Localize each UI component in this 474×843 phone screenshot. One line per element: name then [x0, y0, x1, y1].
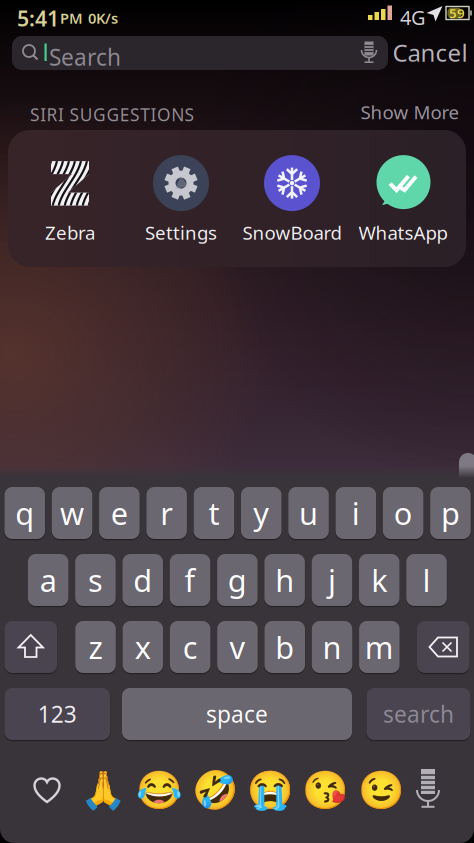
staticText: 😘 [302, 769, 348, 811]
button[interactable]: x [123, 621, 163, 673]
staticText: n [323, 627, 342, 667]
button[interactable]: z [75, 621, 116, 673]
button[interactable]: c [170, 621, 210, 673]
button[interactable]: b [264, 621, 305, 673]
staticText: m [365, 627, 394, 667]
staticText: d [133, 560, 152, 600]
staticText: o [394, 493, 413, 533]
staticText: 🤣 [192, 769, 238, 811]
button[interactable]: p [430, 487, 471, 539]
staticText: Search [49, 42, 121, 72]
staticText: q [15, 493, 34, 533]
staticText: k [371, 560, 387, 600]
button[interactable]: Settings [126, 158, 236, 242]
button[interactable]: 🙏 [80, 769, 126, 811]
button[interactable]: 😭 [247, 769, 293, 811]
staticText: SIRI SUGGESTIONS [30, 103, 194, 126]
button[interactable]: f [170, 554, 210, 606]
staticText: Cancel [392, 37, 467, 68]
staticText: 0K/s [84, 8, 118, 28]
staticText: 59 [449, 4, 465, 22]
button[interactable]: r [146, 487, 187, 539]
staticText: e [111, 493, 128, 533]
button[interactable]: Delete [417, 621, 469, 673]
button[interactable]: Heart [29, 772, 65, 808]
button[interactable]: s [75, 554, 116, 606]
staticText: 😭 [247, 769, 293, 811]
button[interactable]: Shift [4, 621, 57, 673]
button[interactable]: Dictation [356, 37, 382, 67]
button[interactable]: h [264, 554, 305, 606]
staticText: Zebra [45, 220, 95, 245]
staticText: h [275, 560, 294, 600]
staticText: 5:41 [17, 4, 59, 32]
button[interactable]: a [28, 554, 68, 606]
staticText: 😂 [136, 769, 182, 811]
staticText: b [275, 627, 294, 667]
button[interactable]: Cancel [392, 37, 467, 68]
button[interactable]: 😉 [358, 769, 404, 811]
button[interactable]: k [359, 554, 399, 606]
button[interactable]: 😂 [136, 769, 182, 811]
button[interactable]: e [99, 487, 140, 539]
button[interactable]: Search [12, 36, 388, 70]
staticText: y [253, 493, 269, 533]
staticText: search [383, 699, 454, 729]
button[interactable]: space [122, 688, 352, 740]
button[interactable]: search [366, 688, 470, 740]
button[interactable]: i [336, 487, 376, 539]
button[interactable]: v [217, 621, 258, 673]
staticText: f [184, 560, 195, 600]
staticText: l [422, 560, 430, 600]
button[interactable]: m [359, 621, 400, 673]
staticText: c [183, 627, 198, 667]
button[interactable]: WhatsApp [348, 158, 458, 242]
staticText: 😉 [358, 769, 404, 811]
staticText: 123 [38, 699, 77, 729]
staticText: t [208, 493, 219, 533]
button[interactable]: Show More [360, 100, 459, 124]
button[interactable]: Dictation [413, 768, 443, 812]
button[interactable]: t [194, 487, 234, 539]
button[interactable]: l [406, 554, 447, 606]
button[interactable]: Zebra [15, 158, 125, 242]
button[interactable]: 123 [4, 688, 110, 740]
staticText: j [328, 560, 336, 600]
staticText: v [229, 627, 245, 667]
staticText: 4G [400, 4, 426, 31]
button[interactable]: d [122, 554, 163, 606]
staticText: s [88, 560, 103, 600]
staticText: SnowBoard [242, 220, 341, 245]
button[interactable]: 🤣 [192, 769, 238, 811]
staticText: Show More [360, 100, 459, 124]
button[interactable]: q [4, 487, 45, 539]
staticText: p [441, 493, 460, 533]
staticText: g [228, 560, 247, 600]
button[interactable]: u [288, 487, 329, 539]
staticText: Settings [145, 220, 217, 245]
button[interactable]: g [217, 554, 258, 606]
staticText: u [299, 493, 318, 533]
staticText: 🙏 [80, 769, 126, 811]
staticText: WhatsApp [358, 220, 447, 245]
staticText: space [206, 699, 268, 729]
staticText: w [60, 493, 84, 533]
button[interactable]: w [52, 487, 92, 539]
staticText: i [352, 493, 360, 533]
button[interactable]: o [383, 487, 423, 539]
staticText: x [135, 627, 151, 667]
button[interactable]: y [241, 487, 281, 539]
staticText: PM [60, 8, 83, 28]
button[interactable]: SnowBoard [237, 158, 347, 242]
button[interactable]: j [312, 554, 352, 606]
staticText: a [40, 560, 57, 600]
button[interactable]: n [312, 621, 352, 673]
staticText: z [88, 627, 102, 667]
button[interactable]: 😘 [302, 769, 348, 811]
staticText: r [160, 493, 173, 533]
